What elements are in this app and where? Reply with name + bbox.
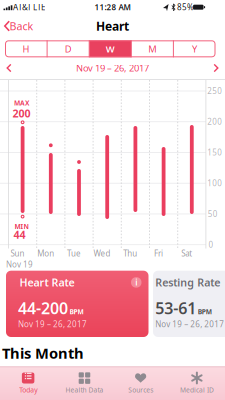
button[interactable]: Resting Rate	[153, 271, 225, 337]
staticText: 50	[208, 209, 218, 219]
staticText: AT&T LTE	[13, 2, 45, 12]
staticText: Nov 19	[6, 259, 33, 270]
button[interactable]: D	[47, 40, 89, 57]
button[interactable]: Back	[4, 15, 38, 36]
staticText: W	[106, 43, 115, 55]
staticText: Back	[9, 19, 33, 33]
staticText: MIN	[14, 222, 28, 231]
staticText: MAX	[14, 99, 29, 107]
button[interactable]: Heart Rate info	[131, 277, 141, 288]
staticText: Resting Rate	[155, 275, 220, 289]
staticText: Mon	[37, 248, 54, 259]
staticText: Health Data	[65, 386, 103, 394]
staticText: 0	[208, 239, 213, 250]
button[interactable]: W	[89, 40, 131, 57]
staticText: Heart	[96, 18, 129, 34]
staticText: Nov 19 – 26, 2017	[76, 62, 149, 74]
button[interactable]: Heart Rate	[6, 271, 148, 337]
staticText: 53-61	[155, 297, 196, 319]
staticText: 200	[12, 106, 30, 120]
staticText: Wed	[94, 248, 111, 259]
button[interactable]: H	[5, 40, 47, 57]
button[interactable]: Next week	[209, 61, 223, 75]
staticText: BPM	[69, 307, 83, 316]
button[interactable]: Previous week	[2, 61, 16, 75]
button[interactable]: M	[131, 40, 173, 57]
button[interactable]: Medical ID	[169, 367, 225, 395]
staticText: Sat	[181, 248, 192, 259]
button[interactable]: Y	[173, 40, 215, 57]
button[interactable]: Sources	[112, 367, 169, 395]
staticText: 11:28 AM	[94, 2, 130, 12]
staticText: 100	[207, 178, 222, 188]
staticText: 44-200	[18, 297, 68, 319]
staticText: 150	[207, 147, 222, 158]
staticText: Sources	[128, 386, 153, 394]
staticText: Tue	[67, 248, 81, 259]
staticText: D	[65, 43, 72, 55]
button[interactable]: Health Data	[56, 367, 112, 395]
staticText: Nov 19 – 26, 2017	[18, 319, 87, 329]
staticText: 44	[13, 227, 25, 242]
staticText: This Month	[2, 343, 84, 363]
staticText: 250	[207, 86, 222, 96]
staticText: i	[135, 277, 137, 288]
staticText: BPM	[198, 307, 212, 316]
staticText: Heart Rate	[19, 275, 74, 289]
staticText: Y	[192, 43, 197, 55]
staticText: M	[148, 43, 156, 55]
staticText: 85%	[177, 2, 194, 12]
staticText: Sun	[10, 248, 24, 259]
staticText: H	[23, 43, 30, 55]
staticText: Medical ID	[180, 386, 214, 394]
staticText: Nov 19 – 26, 2017	[155, 319, 224, 329]
staticText: 200	[207, 116, 222, 127]
staticText: Thu	[123, 248, 137, 259]
staticText: Fri	[154, 248, 163, 259]
staticText: Today	[19, 386, 37, 394]
button[interactable]: Today	[0, 367, 56, 395]
